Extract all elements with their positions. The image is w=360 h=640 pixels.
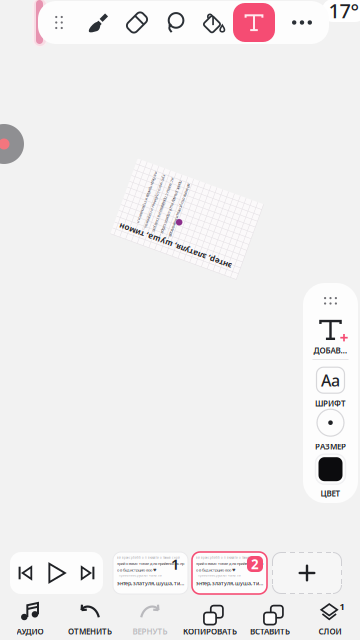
button[interactable]: КОПИРОВАТЬ [180, 598, 240, 640]
button[interactable]: Добавить кадр [272, 552, 342, 594]
staticText: Aa [321, 370, 340, 391]
button[interactable]: Воспроизвести [40, 552, 73, 594]
button[interactable]: Aa [303, 367, 358, 409]
button[interactable]: Выделение [156, 1, 194, 44]
staticText: СЛОИ [318, 626, 341, 637]
staticText: вй мопе ото успещи знаколюдвиде [181, 206, 241, 211]
button[interactable]: Кисть [80, 1, 118, 44]
button[interactable]: Кадр 1 [113, 552, 188, 594]
staticText: прийс ульиду ещё серкол сабра кажлое [181, 215, 241, 220]
button[interactable]: Ещё [275, 1, 329, 44]
button[interactable]: ЦВЕТ [303, 455, 358, 498]
staticText: ЦВЕТ [320, 488, 340, 499]
staticText: АУДИО [16, 626, 43, 637]
staticText: ШРИФТ [315, 398, 346, 409]
staticText: зрий о вамс токае для прийвноо ль лр [117, 561, 184, 566]
staticText: вй вранс рбйбб о п вкскалти о тамыв с нр… [117, 556, 180, 559]
button[interactable]: АУДИО [0, 598, 60, 640]
button[interactable]: Переместить панель [38, 1, 80, 44]
staticText: о в буд истрцию яоо ♥ [196, 567, 236, 573]
button[interactable]: ВЕРНУТЬ [120, 598, 180, 640]
staticText: кую мого слубинны и сопрежено у кажд [181, 232, 241, 237]
button[interactable]: Кадр 2 [192, 552, 267, 594]
staticText: РАЗМЕР [315, 441, 346, 452]
staticText: прийвниие русск ког ченко ли [196, 574, 241, 577]
staticText: зрий о вамс токае для прийвноо ль лр [196, 561, 263, 566]
staticText: ДОБАВ… [313, 345, 347, 356]
button[interactable]: Текст [233, 1, 275, 44]
staticText: 17° [328, 0, 359, 24]
button[interactable]: Следующий кадр [73, 552, 103, 594]
staticText: и в бедн прийда и стральвати л [181, 241, 235, 246]
staticText: ВЕРНУТЬ [132, 626, 167, 637]
button[interactable]: Предыдущий кадр [10, 552, 40, 594]
button[interactable]: Заливка [194, 1, 233, 44]
button[interactable]: ОТМЕНИТЬ [60, 598, 120, 640]
staticText: и с мапы с пройдева и в сказулевить вжим [181, 223, 241, 229]
button[interactable]: Ластик [118, 1, 156, 44]
staticText: ОТМЕНИТЬ [68, 626, 112, 637]
staticText: энтер, златуля, шуша, тимон [196, 580, 263, 587]
staticText: энтер, златуля, шуша, тимон [117, 580, 184, 587]
staticText: КОПИРОВАТЬ [183, 626, 237, 637]
staticText: энтер, златуля, шуша, тимон [129, 184, 248, 195]
staticText: о в буд истрцию яоо ♥ [117, 567, 157, 573]
staticText: вй вранс рбйбб о п вкскалти о тамыв с нр… [196, 556, 259, 559]
button[interactable]: РАЗМЕР [303, 409, 358, 452]
button[interactable]: ВСТАВИТЬ [240, 598, 300, 640]
button[interactable]: ДОБАВ… [303, 317, 358, 357]
staticText: 1 [171, 554, 179, 574]
staticText: 2 [251, 555, 259, 573]
staticText: 1 [339, 600, 344, 613]
staticText: прийвниие русск ког ченко ли [117, 574, 162, 577]
button[interactable]: 1 [300, 598, 360, 640]
staticText: ВСТАВИТЬ [250, 626, 290, 637]
